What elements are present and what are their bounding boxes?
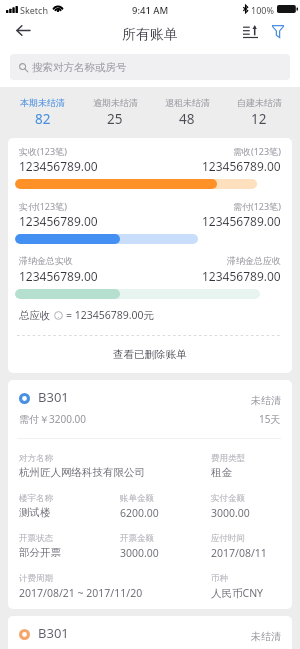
button[interactable]: Sort <box>238 21 262 51</box>
staticText: B301 <box>38 388 69 406</box>
button[interactable]: 逾期未结清 <box>79 87 151 132</box>
staticText: 总应收 <box>19 309 51 322</box>
staticText: 滞纳金总实收 <box>19 255 73 266</box>
staticText: 48 <box>179 110 195 128</box>
button[interactable]: 退租未结清 <box>151 87 223 132</box>
staticText: 需付(123笔) <box>233 200 281 212</box>
staticText: 实付金额 <box>211 493 245 504</box>
staticText: 123456789.00 <box>19 158 98 174</box>
staticText: 2017/08/11 <box>211 546 267 560</box>
staticText: 123456789.00 <box>19 213 98 229</box>
staticText: 未结清 <box>251 630 281 643</box>
staticText: 租金 <box>211 466 232 479</box>
staticText: 自建未结清 <box>237 97 282 108</box>
staticText: 需收(123笔) <box>233 145 281 157</box>
staticText: 实收(123笔) <box>19 145 67 157</box>
staticText: 123456789.00 <box>202 268 281 284</box>
staticText: 人民币CNY <box>211 586 264 600</box>
staticText: 计费周期 <box>19 573 53 584</box>
button[interactable]: 本期未结清 <box>6 87 79 132</box>
staticText: 本期未结清 <box>20 97 65 108</box>
staticText: 开票金额 <box>120 533 154 544</box>
staticText: 25 <box>107 110 123 128</box>
staticText: 滞纳金总应收 <box>227 255 281 266</box>
staticText: 3000.00 <box>211 506 250 520</box>
button[interactable]: 查看已删除账单 <box>8 336 292 372</box>
staticText: 查看已删除账单 <box>113 348 187 361</box>
staticText: 9:41 AM <box>132 4 169 17</box>
staticText: 楼宇名称 <box>19 493 53 504</box>
staticText: 123456789.00 <box>202 158 281 174</box>
staticText: 费用类型 <box>211 453 245 464</box>
staticText: 杭州匠人网络科技有限公司 <box>19 466 145 479</box>
staticText: 3000.00 <box>120 546 159 560</box>
button[interactable]: B301 <box>8 380 292 609</box>
staticText: 123456789.00 <box>202 213 281 229</box>
staticText: 开票状态 <box>19 533 53 544</box>
staticText: 2017/08/21 ~ 2017/11/20 <box>19 586 143 600</box>
staticText: Sketch <box>20 4 48 16</box>
button[interactable]: 搜索对方名称或房号 <box>10 54 290 80</box>
staticText: 账单金额 <box>120 493 154 504</box>
button[interactable]: B301 <box>8 616 292 649</box>
staticText: 82 <box>35 110 51 128</box>
staticText: B301 <box>38 624 69 642</box>
button[interactable]: Back <box>6 23 39 49</box>
staticText: 退租未结清 <box>165 97 210 108</box>
staticText: 100% <box>251 4 274 16</box>
staticText: 对方名称 <box>19 453 53 464</box>
staticText: 币种 <box>211 573 228 584</box>
staticText: 所有账单 <box>122 26 178 44</box>
staticText: 6200.00 <box>120 506 159 520</box>
button[interactable]: Filter <box>266 21 290 51</box>
staticText: 部分开票 <box>19 546 61 559</box>
staticText: 未结清 <box>251 394 281 407</box>
staticText: 需付￥3200.00 <box>19 412 86 426</box>
staticText: 实付(123笔) <box>19 200 67 212</box>
staticText: 应付时间 <box>211 533 245 544</box>
staticText: 测试楼 <box>19 506 51 519</box>
staticText: 15天 <box>259 412 281 426</box>
staticText: 搜索对方名称或房号 <box>32 61 127 74</box>
staticText: 逾期未结清 <box>93 97 138 108</box>
staticText: 123456789.00 <box>19 268 98 284</box>
staticText: 12 <box>251 110 267 128</box>
button[interactable]: 自建未结清 <box>223 87 295 132</box>
staticText: = 123456789.00元 <box>66 308 155 322</box>
